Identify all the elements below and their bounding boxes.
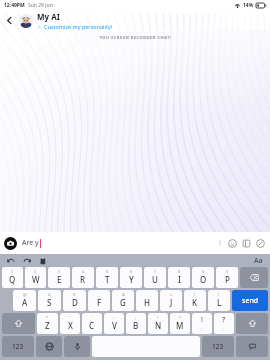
button[interactable]: Are y bbox=[22, 232, 215, 254]
button[interactable]: Backspace bbox=[240, 267, 268, 288]
button[interactable]: Shift bbox=[236, 313, 268, 334]
button[interactable]: Undo bbox=[5, 255, 16, 266]
button[interactable]: " bbox=[60, 313, 80, 334]
button[interactable]: ? bbox=[214, 313, 234, 334]
staticText: @ bbox=[23, 292, 27, 297]
button[interactable]: # bbox=[38, 290, 61, 311]
staticText: R bbox=[80, 274, 86, 285]
staticText: 12:49PM bbox=[4, 2, 25, 9]
staticText: + bbox=[170, 292, 173, 297]
button[interactable]: : bbox=[104, 313, 124, 334]
staticText: A bbox=[22, 297, 28, 308]
staticText: 3 bbox=[58, 269, 61, 274]
button[interactable]: & bbox=[112, 290, 134, 311]
staticText: 1 bbox=[11, 269, 14, 274]
staticText: Y bbox=[129, 274, 134, 285]
staticText: " bbox=[69, 315, 71, 320]
button[interactable]: Aa bbox=[252, 255, 265, 267]
staticText: L bbox=[217, 297, 222, 308]
button[interactable]: + bbox=[160, 290, 182, 311]
staticText: 0 bbox=[226, 269, 229, 274]
button[interactable]: My AI avatar bbox=[19, 14, 33, 28]
staticText: 8 bbox=[178, 269, 181, 274]
staticText: N bbox=[155, 320, 162, 331]
staticText: ) bbox=[218, 292, 220, 297]
button[interactable]: Back bbox=[0, 11, 19, 30]
button[interactable]: Stickers bbox=[240, 237, 252, 249]
staticText: O bbox=[200, 274, 207, 285]
button[interactable]: Change language bbox=[36, 336, 62, 357]
staticText: K bbox=[192, 297, 198, 308]
staticText: # bbox=[48, 292, 51, 297]
button[interactable]: 123 bbox=[202, 336, 234, 357]
staticText: H bbox=[144, 297, 150, 308]
staticText: ? bbox=[222, 315, 226, 325]
button[interactable]: * bbox=[37, 313, 58, 334]
button[interactable]: Shift bbox=[2, 313, 35, 334]
button[interactable]: 2 bbox=[25, 267, 46, 288]
staticText: Sun 29 Jun bbox=[28, 2, 53, 9]
staticText: X bbox=[68, 320, 73, 331]
button[interactable]: ! bbox=[148, 313, 168, 334]
staticText: Are y bbox=[22, 238, 39, 248]
staticText: S bbox=[47, 297, 52, 308]
staticText: V bbox=[112, 320, 117, 331]
staticText: C bbox=[89, 320, 95, 331]
staticText: I bbox=[178, 274, 181, 285]
button[interactable]: More options bbox=[215, 238, 225, 248]
staticText: F bbox=[97, 297, 102, 308]
button[interactable]: 9 bbox=[192, 267, 214, 288]
button[interactable]: ' bbox=[82, 313, 102, 334]
staticText: J bbox=[170, 297, 173, 308]
button[interactable]: My AI bbox=[37, 11, 270, 30]
button[interactable]: 1 bbox=[2, 267, 23, 288]
staticText: 5 bbox=[106, 269, 109, 274]
staticText: 4 bbox=[82, 269, 85, 274]
button[interactable]: 7 bbox=[144, 267, 166, 288]
staticText: 123 bbox=[12, 342, 24, 351]
button[interactable]: 3 bbox=[48, 267, 70, 288]
button[interactable]: @ bbox=[13, 290, 36, 311]
staticText: D bbox=[72, 297, 78, 308]
staticText: U bbox=[152, 274, 158, 285]
staticText: 9 bbox=[202, 269, 205, 274]
staticText: $ bbox=[73, 292, 76, 297]
button[interactable]: 123 bbox=[2, 336, 34, 357]
staticText: Z bbox=[45, 320, 50, 331]
staticText: ' bbox=[92, 315, 93, 320]
staticText: _ bbox=[98, 292, 100, 297]
button[interactable]: _ bbox=[88, 290, 110, 311]
button[interactable]: 4 bbox=[72, 267, 94, 288]
staticText: M bbox=[176, 320, 184, 331]
staticText: G bbox=[120, 297, 126, 308]
staticText: Q bbox=[9, 274, 16, 285]
button[interactable]: ? bbox=[170, 313, 190, 334]
button[interactable]: Attach bbox=[254, 237, 266, 249]
button[interactable]: $ bbox=[63, 290, 86, 311]
staticText: 7 bbox=[154, 269, 157, 274]
staticText: : bbox=[113, 315, 115, 320]
button[interactable]: Camera bbox=[4, 237, 17, 250]
button[interactable]: 8 bbox=[168, 267, 190, 288]
staticText: ( bbox=[194, 292, 196, 297]
button[interactable]: ( bbox=[184, 290, 206, 311]
button[interactable]: 5 bbox=[96, 267, 118, 288]
button[interactable]: send bbox=[232, 290, 268, 311]
button[interactable]: Emoji keyboard bbox=[236, 336, 268, 357]
button[interactable]: Redo bbox=[21, 255, 32, 266]
button[interactable]: 6 bbox=[120, 267, 142, 288]
staticText: 2 bbox=[34, 269, 37, 274]
button[interactable]: - bbox=[136, 290, 158, 311]
button[interactable]: ; bbox=[126, 313, 146, 334]
staticText: My AI bbox=[37, 11, 60, 22]
staticText: P bbox=[225, 274, 230, 285]
staticText: 123 bbox=[212, 342, 224, 351]
button[interactable]: Emoji bbox=[226, 237, 238, 249]
button[interactable]: ! bbox=[192, 313, 212, 334]
button[interactable]: 0 bbox=[216, 267, 238, 288]
button[interactable]: ) bbox=[208, 290, 230, 311]
button[interactable]: Clipboard bbox=[37, 255, 48, 266]
button[interactable]: Voice input bbox=[64, 336, 90, 357]
staticText: ! bbox=[201, 315, 203, 325]
